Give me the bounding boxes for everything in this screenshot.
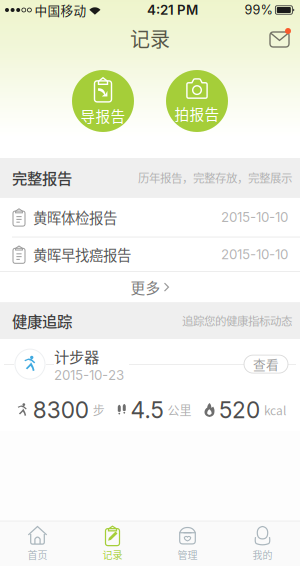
staticText: 99% bbox=[244, 2, 272, 18]
staticText: 520 bbox=[219, 396, 260, 424]
button[interactable]: 记录 bbox=[75, 521, 150, 566]
staticText: 历年报告，完整存放，完整展示 bbox=[138, 169, 292, 186]
button[interactable]: 拍报告 bbox=[166, 70, 228, 132]
button[interactable]: Messages bbox=[259, 29, 300, 47]
staticText: 追踪您的健康指标动态 bbox=[182, 312, 292, 329]
staticText: 更多 bbox=[130, 276, 160, 298]
staticText: 我的 bbox=[252, 547, 272, 562]
button[interactable]: 导报告 bbox=[72, 70, 134, 132]
staticText: 2015-10-23 bbox=[54, 367, 124, 383]
staticText: 4.5 bbox=[130, 396, 163, 424]
staticText: 完整报告 bbox=[12, 166, 72, 189]
button[interactable]: 黄晖早找癌报告 bbox=[0, 238, 300, 271]
staticText: 4:21 PM bbox=[147, 2, 198, 18]
staticText: 健康追踪 bbox=[12, 309, 72, 332]
staticText: 记录 bbox=[102, 547, 122, 562]
button[interactable]: 更多 bbox=[0, 272, 300, 302]
staticText: 计步器 bbox=[54, 345, 99, 367]
staticText: 首页 bbox=[27, 547, 47, 562]
staticText: 导报告 bbox=[80, 105, 125, 126]
button[interactable]: 我的 bbox=[225, 521, 300, 566]
staticText: 记录 bbox=[130, 23, 170, 52]
button[interactable]: 首页 bbox=[0, 521, 75, 566]
staticText: 中国移动 bbox=[31, 1, 89, 19]
staticText: 黄晖早找癌报告 bbox=[33, 244, 131, 265]
staticText: 步 bbox=[93, 401, 105, 419]
button[interactable]: 管理 bbox=[150, 521, 225, 566]
staticText: 查看 bbox=[253, 355, 279, 373]
staticText: 2015-10-10 bbox=[221, 246, 288, 262]
button[interactable]: 查看 bbox=[244, 355, 288, 373]
staticText: 拍报告 bbox=[174, 103, 219, 124]
button[interactable]: 黄晖体检报告 bbox=[0, 201, 300, 234]
staticText: 黄晖体检报告 bbox=[33, 207, 117, 228]
staticText: 2015-10-10 bbox=[221, 209, 288, 225]
staticText: 管理 bbox=[177, 547, 197, 562]
staticText: kcal bbox=[264, 401, 286, 419]
staticText: 8300 bbox=[33, 396, 89, 424]
staticText: 公里 bbox=[167, 401, 191, 419]
